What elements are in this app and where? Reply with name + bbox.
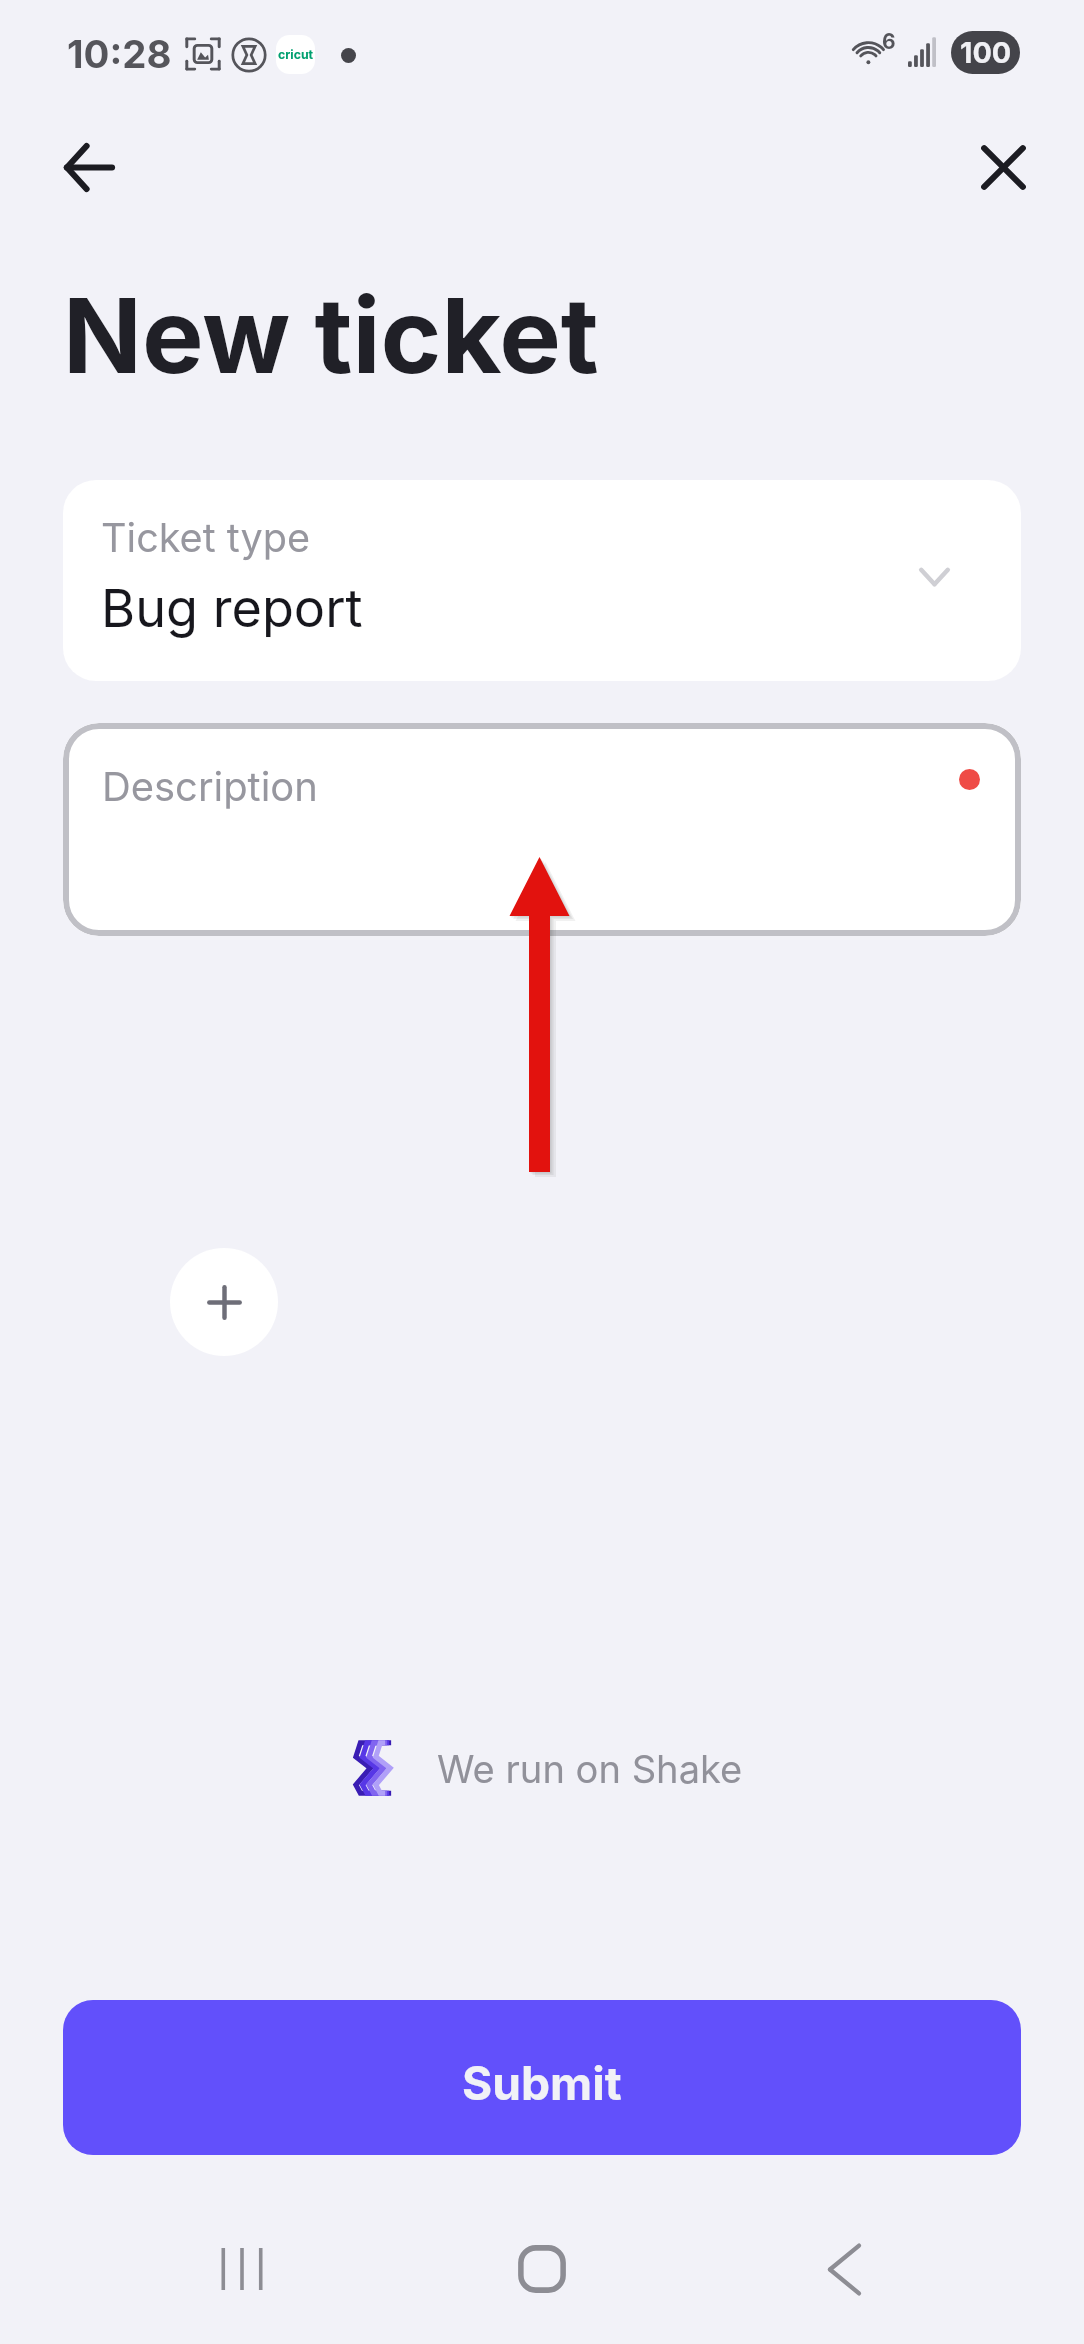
- button[interactable]: Close: [936, 100, 1071, 235]
- button[interactable]: Recents: [195, 2209, 288, 2329]
- staticText: Bug report: [101, 576, 363, 639]
- staticText: 100: [960, 35, 1012, 70]
- button[interactable]: Back: [798, 2209, 891, 2329]
- staticText: Description: [102, 762, 318, 810]
- button[interactable]: Description: [63, 723, 1021, 936]
- button[interactable]: Add attachment: [170, 1248, 278, 1356]
- button[interactable]: Ticket type: [63, 480, 1021, 681]
- staticText: Submit: [462, 2055, 622, 2111]
- staticText: New ticket: [63, 273, 599, 398]
- staticText: 6: [882, 29, 896, 54]
- staticText: Ticket type: [101, 514, 311, 562]
- staticText: 10:28: [67, 31, 172, 77]
- staticText: cricut: [278, 47, 314, 62]
- button[interactable]: Submit: [63, 2000, 1021, 2155]
- button[interactable]: Home: [495, 2209, 588, 2329]
- button[interactable]: Back: [22, 100, 157, 235]
- staticText: We run on Shake: [437, 1746, 743, 1792]
